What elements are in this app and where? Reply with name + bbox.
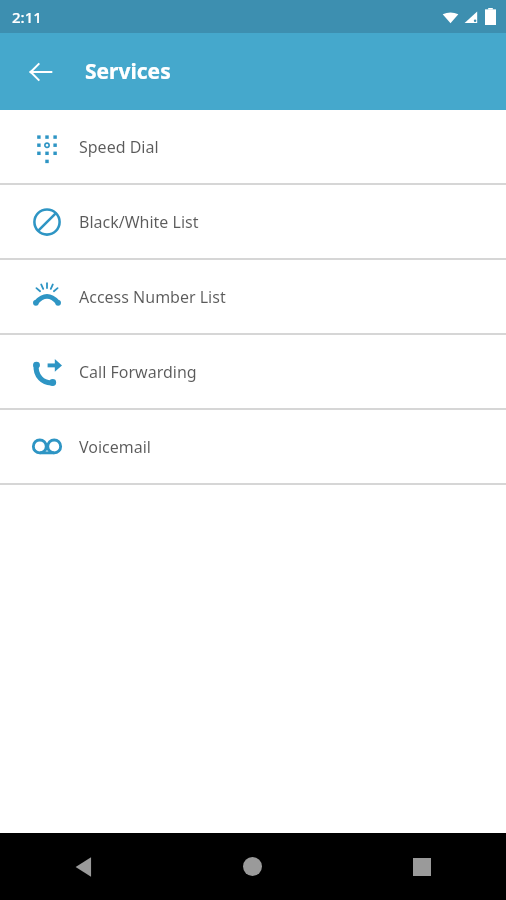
staticText: Voicemail [79,436,151,458]
button[interactable]: Voicemail [0,410,506,483]
button[interactable]: Recent apps [337,833,506,900]
staticText: Black/White List [79,211,199,233]
button[interactable]: Access Number List [0,260,506,333]
button[interactable]: Home [168,833,337,900]
button[interactable]: Back [0,833,168,900]
staticText: 2:11 [12,7,42,27]
button[interactable]: Back [17,48,65,96]
button[interactable]: Speed Dial [0,110,506,183]
staticText: Speed Dial [79,136,159,158]
button[interactable]: Black/White List [0,185,506,258]
button[interactable]: Call Forwarding [0,335,506,408]
staticText: Services [85,57,171,86]
staticText: Call Forwarding [79,361,197,383]
staticText: Access Number List [79,286,226,308]
